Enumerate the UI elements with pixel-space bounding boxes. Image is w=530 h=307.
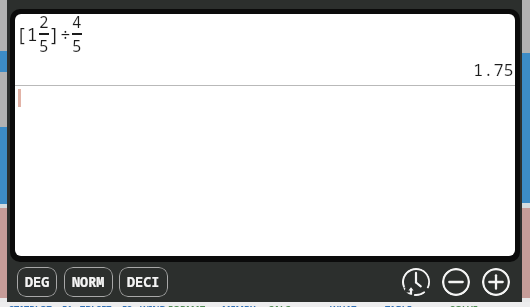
staticText: ]: [49, 22, 60, 47]
staticText: TABLE: [385, 302, 412, 307]
staticText: ÷: [60, 22, 71, 47]
button[interactable]: History: [402, 268, 430, 296]
staticText: NORM: [72, 273, 105, 291]
staticText: F1: [62, 302, 73, 307]
staticText: [1: [16, 22, 38, 47]
staticText: WHAT: [330, 302, 357, 307]
staticText: STATPLOT: [9, 302, 52, 307]
staticText: 2: [39, 14, 49, 33]
button[interactable]: NORM: [64, 267, 113, 297]
staticText: FORMAT: [168, 302, 206, 307]
staticText: 5: [72, 35, 82, 57]
button[interactable]: DECI: [119, 267, 168, 297]
staticText: WIND: [140, 302, 167, 307]
staticText: DEG: [25, 273, 50, 291]
staticText: 4: [72, 14, 82, 33]
staticText: 5: [39, 35, 49, 57]
staticText: SOLVE: [450, 302, 478, 307]
button[interactable]: Zoom out: [442, 268, 470, 296]
button[interactable]: Zoom in: [482, 268, 510, 296]
staticText: F2: [122, 302, 133, 307]
staticText: CALC: [268, 302, 291, 307]
staticText: DECI: [127, 273, 160, 291]
staticText: 1.75: [473, 58, 514, 81]
button[interactable]: DEG: [17, 267, 57, 297]
staticText: TBLSET: [80, 302, 112, 307]
staticText: MEMRY: [222, 302, 256, 307]
